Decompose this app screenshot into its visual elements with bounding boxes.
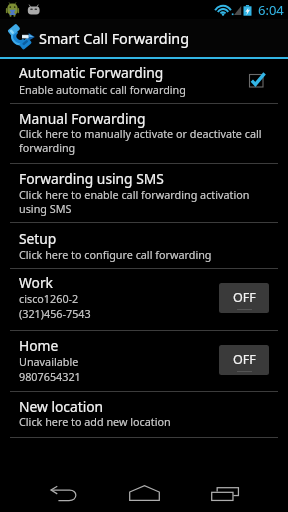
button[interactable]: Back bbox=[34, 479, 94, 509]
staticText: Enable automatic call forwarding bbox=[19, 82, 269, 97]
staticText: Click here to add new location bbox=[19, 414, 269, 429]
staticText: Home bbox=[19, 336, 59, 355]
staticText: Work bbox=[19, 273, 53, 292]
staticText: Click here to enable call forwarding act… bbox=[19, 187, 269, 216]
staticText: cisco1260-2 (321)456-7543 bbox=[19, 291, 269, 321]
staticText: Manual Forwarding bbox=[19, 109, 146, 128]
staticText: Forwarding using SMS bbox=[19, 169, 164, 188]
staticText: 6:04 bbox=[258, 1, 284, 19]
staticText: New location bbox=[19, 397, 104, 416]
button[interactable]: Home bbox=[114, 478, 174, 508]
staticText: Smart Call Forwarding bbox=[39, 29, 190, 49]
button[interactable]: OFF bbox=[219, 345, 269, 375]
button[interactable]: Work bbox=[0, 269, 288, 330]
staticText: Unavailable 9807654321 bbox=[19, 354, 269, 384]
button[interactable]: Setup bbox=[0, 223, 288, 268]
staticText: Click here to configure call forwarding bbox=[19, 247, 269, 262]
button[interactable]: New location bbox=[0, 392, 288, 437]
button[interactable]: OFF bbox=[219, 283, 269, 313]
button[interactable]: Recent apps bbox=[195, 479, 255, 509]
button[interactable]: Forwarding using SMS bbox=[0, 164, 288, 222]
staticText: OFF bbox=[233, 351, 256, 368]
button[interactable]: Home bbox=[0, 331, 288, 391]
button[interactable]: Automatic forwarding, enabled bbox=[246, 70, 268, 92]
staticText: OFF bbox=[233, 289, 256, 306]
staticText: Click here to manually activate or deact… bbox=[19, 126, 269, 155]
staticText: Automatic Forwarding bbox=[19, 63, 164, 82]
button[interactable]: Manual Forwarding bbox=[0, 104, 288, 163]
staticText: Setup bbox=[19, 229, 57, 248]
button[interactable]: Automatic Forwarding bbox=[0, 59, 288, 103]
